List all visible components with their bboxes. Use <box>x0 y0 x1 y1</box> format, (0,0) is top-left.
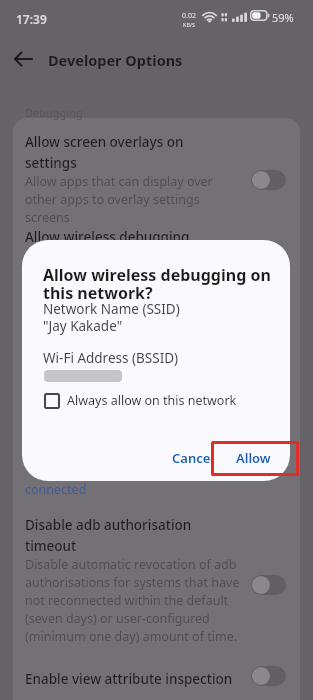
staticText: Debugging <box>25 105 83 120</box>
button[interactable] <box>13 505 300 650</box>
staticText: 0.02 <box>182 11 196 21</box>
button[interactable] <box>251 666 286 686</box>
staticText: Allow screen overlays on settings <box>25 133 184 172</box>
staticText: Wi-Fi Address (BSSID) <box>43 349 179 367</box>
button[interactable]: Always allow on this network <box>44 392 237 409</box>
staticText: connected <box>25 481 87 498</box>
staticText: KB/S <box>183 21 196 28</box>
staticText: Disable automatic revocation of adb auth… <box>25 556 240 645</box>
button[interactable] <box>13 120 300 228</box>
button[interactable] <box>8 45 38 73</box>
staticText: 59% <box>272 10 294 25</box>
button[interactable] <box>13 655 300 700</box>
staticText: Allow wireless debugging on this network… <box>43 264 271 303</box>
button[interactable] <box>251 575 286 595</box>
staticText: Disable adb authorisation timeout <box>25 516 192 555</box>
button[interactable]: Allow <box>227 443 279 473</box>
staticText: Enable view attribute inspection <box>25 670 233 688</box>
button[interactable] <box>251 170 286 190</box>
staticText: Always allow on this network <box>67 392 237 409</box>
staticText: Allow apps that can display over other a… <box>25 173 213 226</box>
staticText: Cancel <box>172 449 215 467</box>
staticText: Allow wireless debugging <box>25 228 190 246</box>
button[interactable]: Cancel <box>165 443 221 473</box>
staticText: 17:39 <box>16 11 47 27</box>
staticText: Network Name (SSID) "Jay Kakade" <box>43 300 180 335</box>
staticText: Allow <box>236 449 271 467</box>
staticText: Developer Options <box>48 50 183 70</box>
